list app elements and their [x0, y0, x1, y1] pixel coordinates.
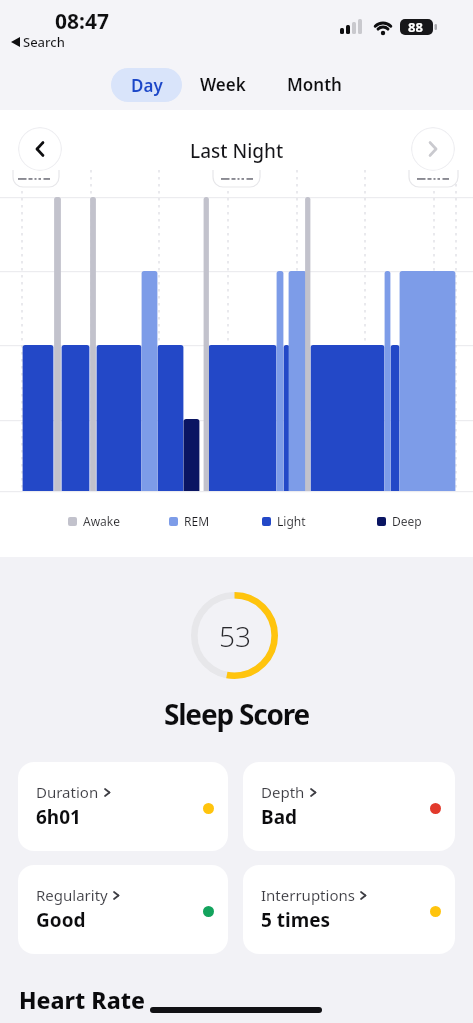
- button[interactable]: Search: [11, 33, 65, 51]
- staticText: Last Night: [190, 138, 284, 164]
- staticText: Light: [277, 513, 306, 529]
- button[interactable]: Interruptions: [243, 865, 455, 954]
- button[interactable]: [18, 127, 62, 171]
- staticText: REM: [184, 513, 210, 529]
- button[interactable]: Week: [200, 73, 246, 96]
- staticText: Month: [287, 73, 342, 96]
- staticText: 08:47: [55, 7, 109, 36]
- staticText: Interruptions: [261, 885, 355, 905]
- button[interactable]: Duration: [18, 762, 228, 851]
- staticText: Heart Rate: [19, 984, 145, 1015]
- button[interactable]: [411, 127, 455, 171]
- staticText: Good: [36, 907, 86, 933]
- button[interactable]: Regularity: [18, 865, 228, 954]
- staticText: 88: [408, 18, 423, 36]
- button[interactable]: Depth: [243, 762, 455, 851]
- staticText: Bad: [261, 804, 298, 830]
- staticText: Deep: [392, 513, 422, 529]
- staticText: Day: [131, 74, 163, 97]
- staticText: Duration: [36, 782, 99, 802]
- staticText: Search: [23, 33, 65, 51]
- button[interactable]: Day: [111, 68, 182, 102]
- staticText: 6h01: [36, 804, 81, 830]
- staticText: Awake: [83, 513, 121, 529]
- staticText: Sleep Score: [164, 695, 310, 733]
- staticText: Week: [200, 73, 246, 96]
- staticText: Regularity: [36, 885, 108, 905]
- button[interactable]: Month: [287, 73, 342, 96]
- staticText: 5 times: [261, 907, 331, 933]
- staticText: Depth: [261, 782, 305, 802]
- staticText: 53: [219, 617, 251, 655]
